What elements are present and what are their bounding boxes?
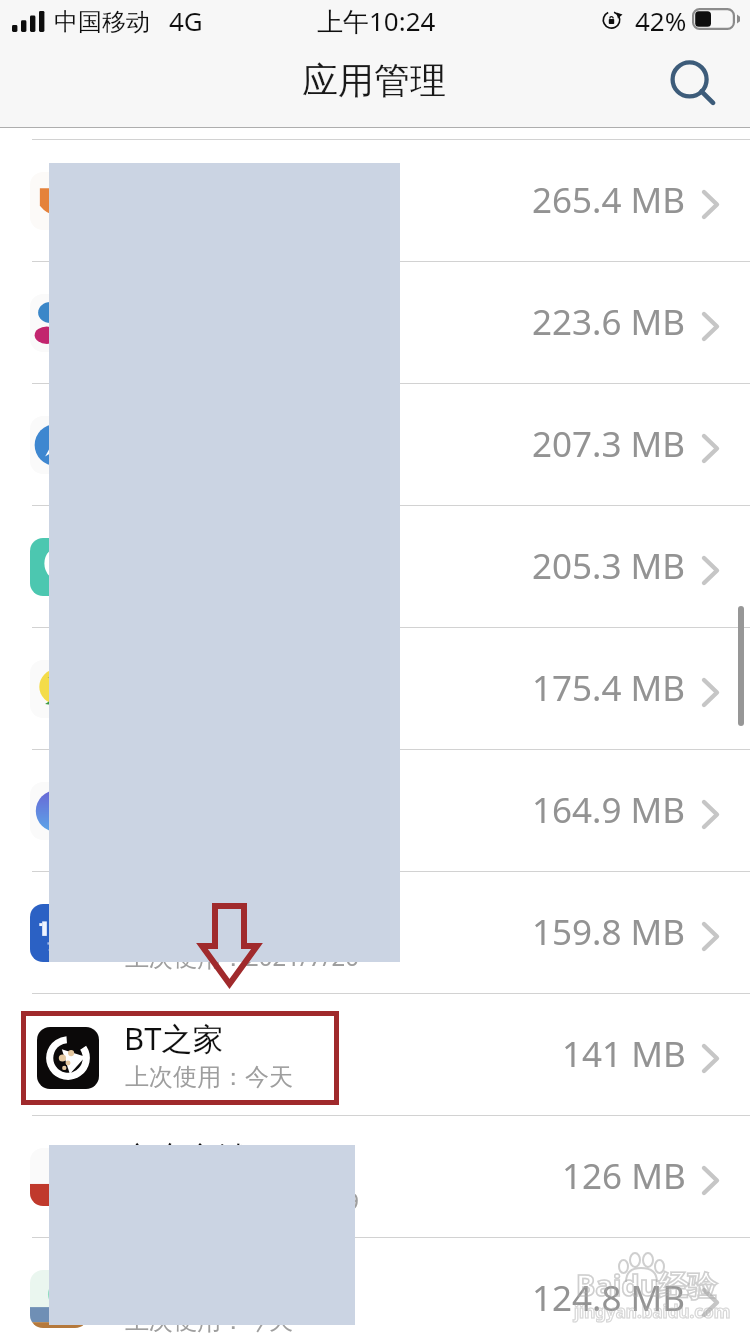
staticText: 上次使用：2021/7/19 xyxy=(125,1184,359,1217)
staticText: 124.8 MB xyxy=(532,1274,686,1322)
staticText: 175.4 MB xyxy=(532,664,686,712)
staticText: 中国移动 xyxy=(54,7,150,37)
staticText: 164.9 MB xyxy=(532,786,686,834)
button[interactable]: 265.4 MB xyxy=(0,140,750,262)
button[interactable]: 164.9 MB xyxy=(0,750,750,872)
staticText: 159.8 MB xyxy=(532,908,686,956)
staticText: 铁路12306 xyxy=(124,895,275,937)
staticText: 205.3 MB xyxy=(532,542,686,590)
button[interactable]: 223.6 MB xyxy=(0,262,750,384)
staticText: jingyan.baidu.com xyxy=(574,1300,731,1323)
staticText: 126 MB xyxy=(562,1152,686,1200)
staticText: 265.4 MB xyxy=(532,176,686,224)
staticText: 京东商城 xyxy=(124,1139,248,1178)
staticText: 207.3 MB xyxy=(532,420,686,468)
staticText: Baidu经验 xyxy=(576,1265,717,1305)
staticText: 141 MB xyxy=(562,1030,686,1078)
staticText: BT之家 xyxy=(124,1017,224,1059)
staticText: 42% xyxy=(635,3,687,38)
staticText: 应用管理 xyxy=(302,58,446,103)
staticText: 上次使用：今天 xyxy=(125,1306,293,1334)
staticText: 4G xyxy=(169,3,203,38)
button[interactable]: 175.4 MB xyxy=(0,628,750,750)
button[interactable]: 207.3 MB xyxy=(0,384,750,506)
button[interactable]: 124.8 MB xyxy=(0,1238,750,1334)
button[interactable]: 159.8 MB xyxy=(0,872,750,994)
staticText: 223.6 MB xyxy=(532,298,686,346)
staticText: 上次使用：今天 xyxy=(125,1062,293,1092)
button[interactable]: Search xyxy=(665,53,721,109)
button[interactable]: 126 MB xyxy=(0,1116,750,1238)
staticText: 上午10:24 xyxy=(317,3,436,39)
staticText: 上次使用：2021/7/20 xyxy=(125,940,359,973)
button[interactable]: 141 MB xyxy=(0,994,750,1116)
button[interactable]: 205.3 MB xyxy=(0,506,750,628)
